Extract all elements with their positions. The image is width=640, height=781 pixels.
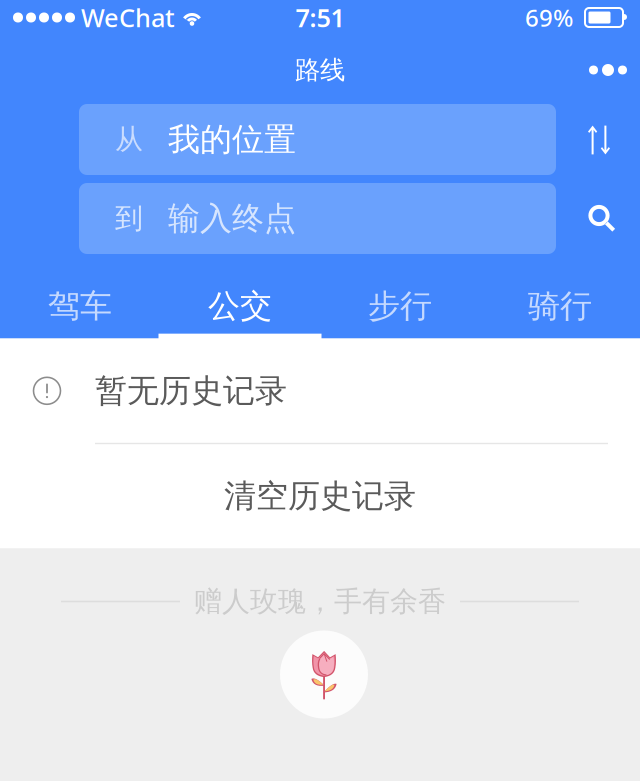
button[interactable]: More — [578, 46, 638, 94]
staticText: 骑行 — [528, 286, 592, 326]
staticText: 清空历史记录 — [224, 476, 416, 516]
staticText: WeChat — [81, 1, 175, 34]
staticText: 暂无历史记录 — [95, 371, 287, 410]
staticText: 公交 — [208, 286, 272, 326]
staticText: 69% — [525, 2, 573, 33]
staticText: 步行 — [368, 286, 432, 326]
button[interactable]: 步行 — [320, 253, 480, 338]
staticText: 驾车 — [48, 286, 112, 326]
button[interactable]: 公交 — [160, 253, 320, 338]
button[interactable]: Search — [588, 183, 634, 253]
staticText: 从 — [115, 122, 143, 157]
staticText: 输入终点 — [168, 199, 296, 238]
button[interactable]: 到 — [79, 183, 556, 254]
staticText: 赠人玫瑰，手有余香 — [194, 584, 446, 619]
button[interactable]: Swap start and destination — [588, 104, 634, 175]
button[interactable]: 骑行 — [480, 253, 640, 338]
button[interactable]: 驾车 — [0, 253, 160, 338]
staticText: 路线 — [295, 54, 345, 85]
staticText: 我的位置 — [168, 120, 296, 159]
button[interactable]: 从 — [79, 104, 556, 175]
staticText: 到 — [115, 201, 143, 236]
button[interactable]: 清空历史记录 — [0, 444, 640, 548]
staticText: 7:51 — [295, 1, 344, 34]
